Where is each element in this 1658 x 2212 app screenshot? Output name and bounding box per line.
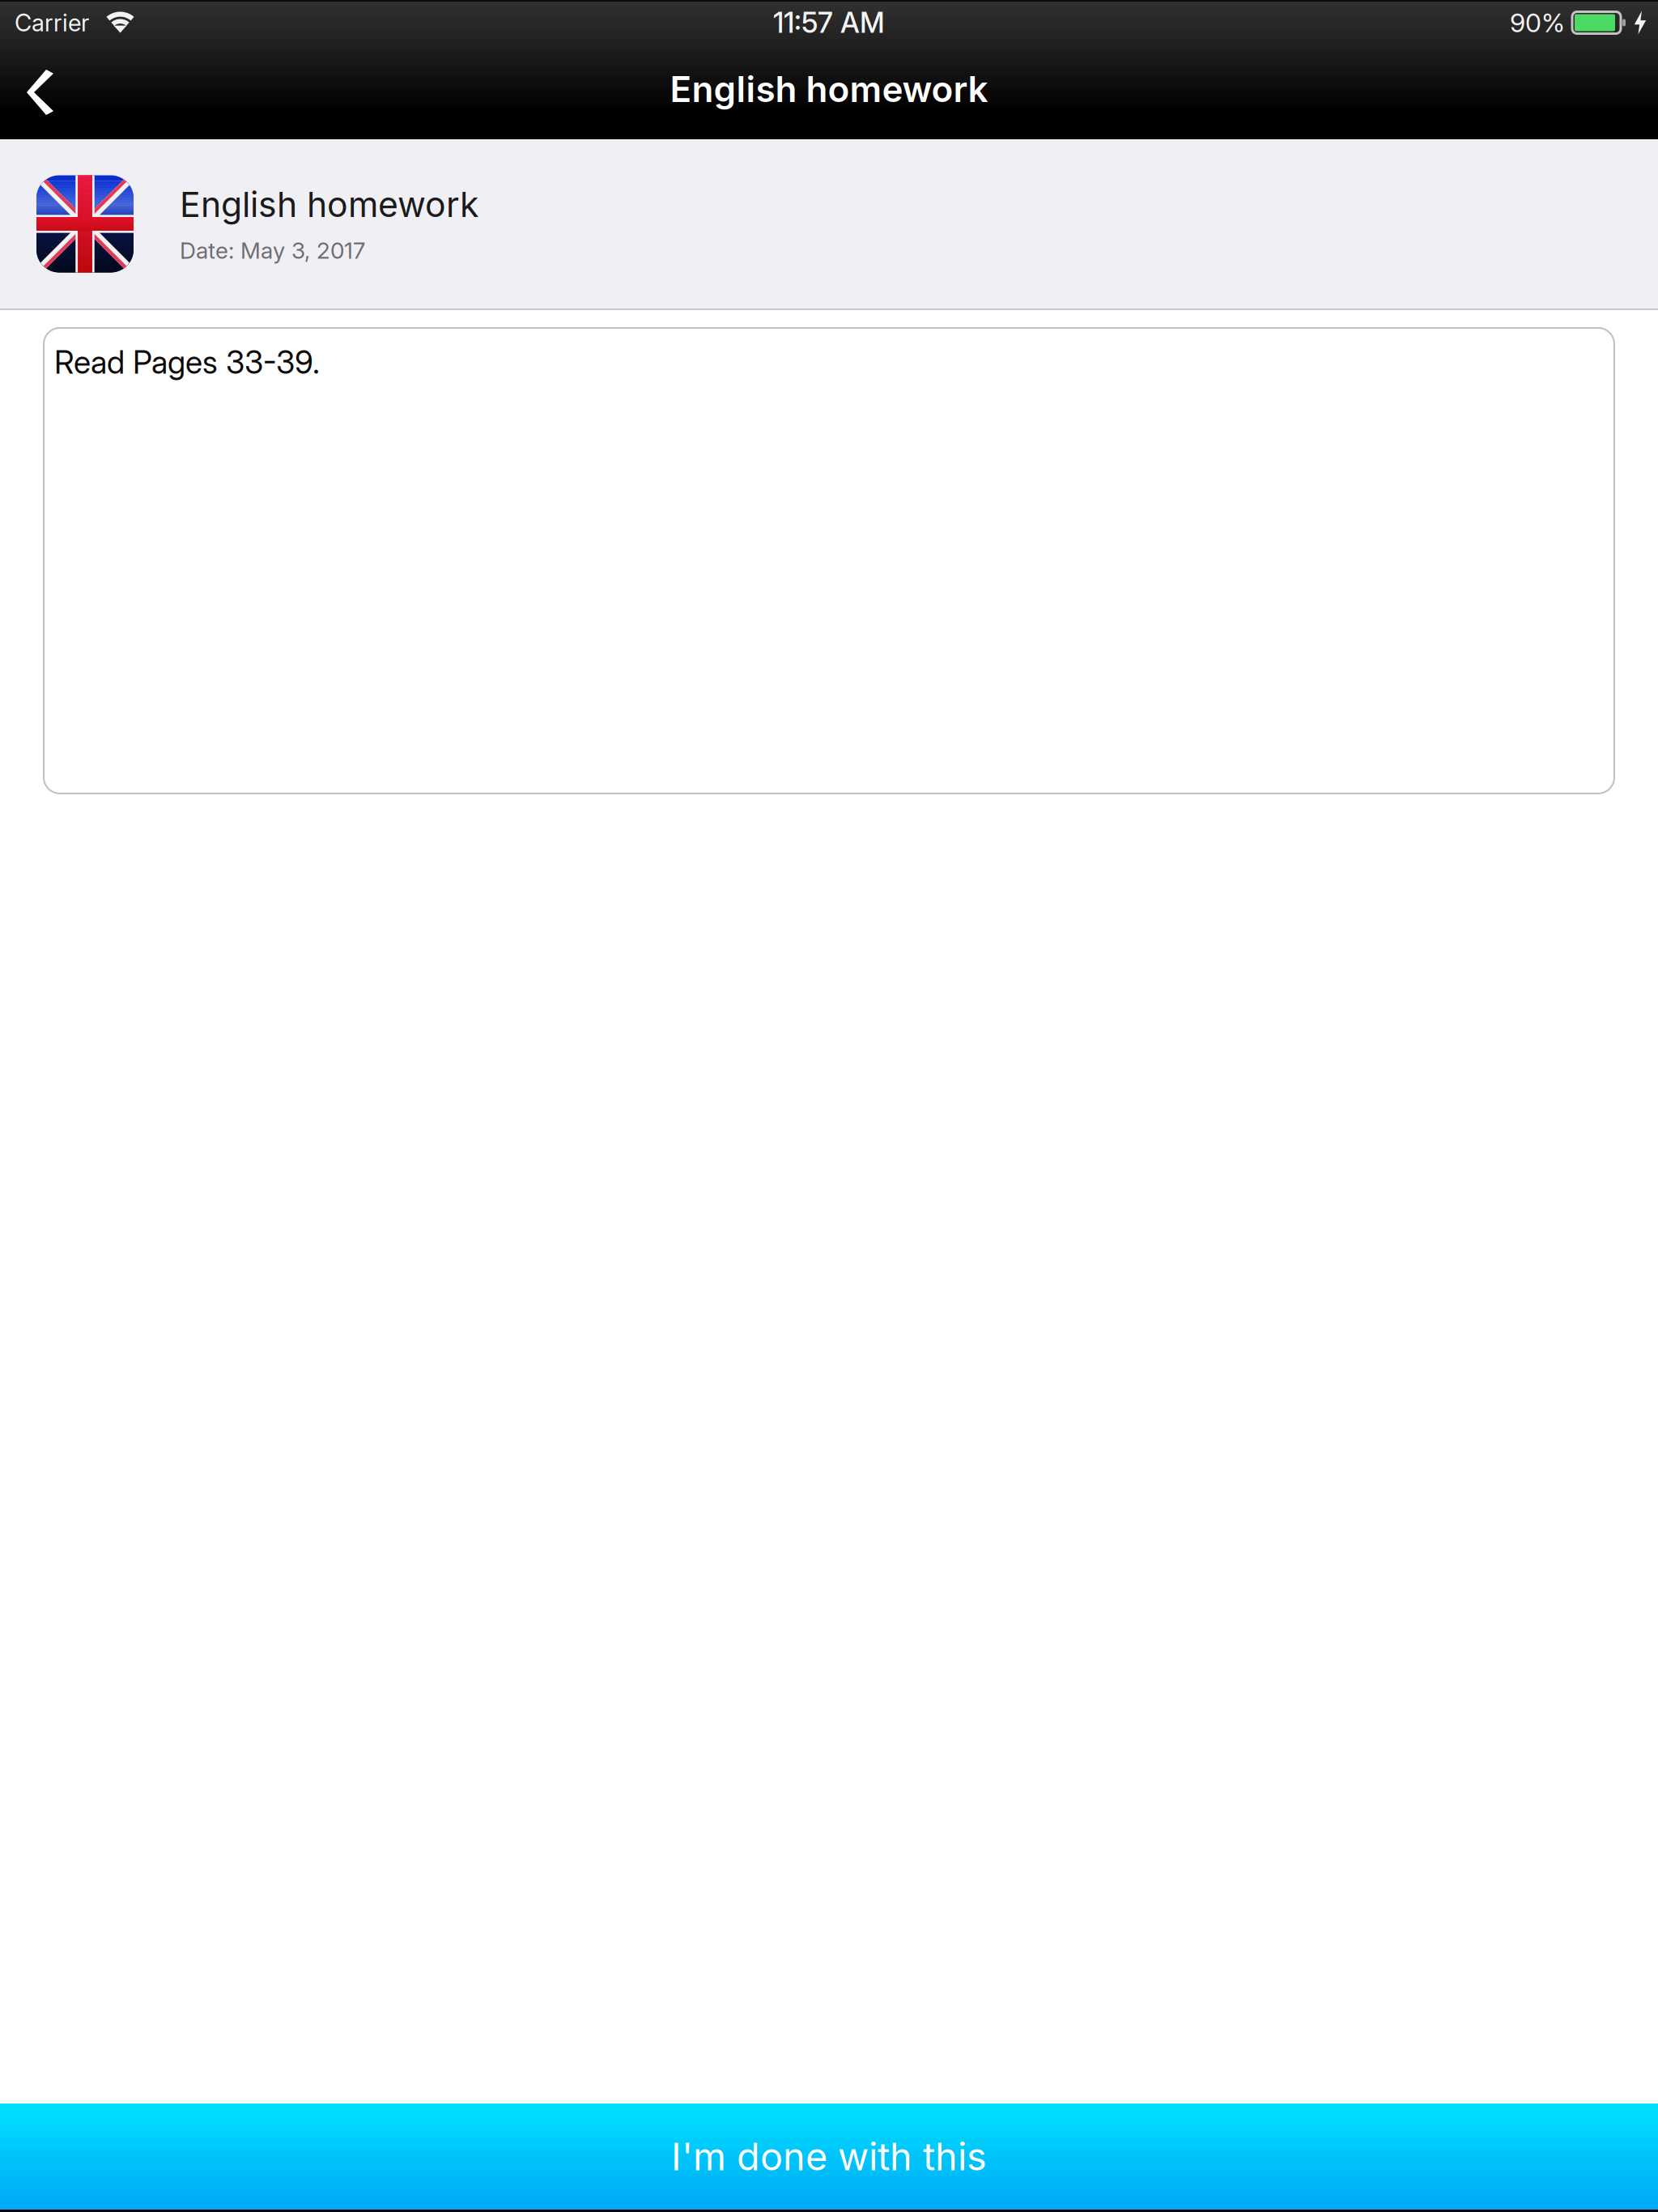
staticText: English homework: [670, 68, 988, 111]
staticText: 90%: [1510, 7, 1565, 38]
staticText: English homework: [180, 184, 478, 225]
button[interactable]: Back: [0, 47, 80, 138]
staticText: Date: May 3, 2017: [180, 237, 365, 264]
button[interactable]: I'm done with this: [0, 2104, 1658, 2212]
staticText: Read Pages 33-39.: [54, 343, 320, 381]
staticText: 11:57 AM: [773, 6, 885, 40]
staticText: Carrier: [15, 8, 89, 37]
staticText: I'm done with this: [671, 2134, 987, 2179]
